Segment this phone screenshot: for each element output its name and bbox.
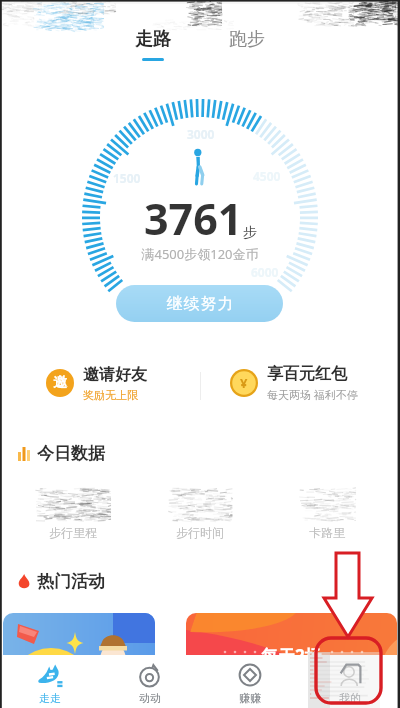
other: 走走 (37, 662, 63, 688)
other: 动动 (137, 662, 163, 688)
staticText: 每天两场 福利不停 (267, 387, 358, 402)
button[interactable]: 步行时间 (136, 486, 263, 540)
staticText: 6000 (251, 264, 279, 280)
staticText: 热门活动 (37, 571, 105, 592)
staticText: 步行时间 (176, 525, 224, 540)
staticText: 赚赚 (239, 691, 261, 705)
staticText: 1500 (113, 170, 141, 186)
button[interactable]: 我的 (300, 655, 400, 708)
staticText: 满4500步领120金币 (0, 245, 400, 263)
staticText: 走路 (135, 28, 171, 51)
staticText: 跑步 (229, 28, 265, 51)
staticText: 邀 (53, 374, 67, 392)
staticText: 走走 (39, 691, 61, 705)
staticText: 4500 (253, 168, 281, 184)
staticText: 继续努力 (166, 294, 234, 314)
staticText: 我的 (339, 691, 361, 705)
button[interactable] (3, 613, 155, 708)
button[interactable]: 卡路里 (263, 486, 390, 540)
staticText: 卡路里 (309, 525, 345, 540)
staticText: 邀请好友 (83, 365, 147, 385)
button[interactable]: 继续努力 (116, 285, 283, 322)
button[interactable]: 跑步 (219, 28, 275, 61)
staticText: 今日数据 (37, 443, 105, 464)
button[interactable]: 邀 (15, 348, 200, 418)
button[interactable]: ¥ (201, 348, 385, 418)
staticText: 3000 (187, 126, 215, 142)
staticText: 步 (243, 224, 257, 242)
staticText: 3761 (144, 189, 243, 248)
staticText: 享百元红包 (267, 364, 347, 384)
button[interactable]: 走走 (0, 655, 100, 708)
button[interactable]: 每天2场 (186, 613, 397, 708)
button[interactable]: 赚赚 (200, 655, 300, 708)
staticText: 奖励无上限 (83, 388, 138, 402)
other: 我的 (337, 662, 363, 688)
button[interactable]: 走路 (125, 28, 181, 61)
other: 赚赚 (237, 662, 263, 688)
staticText: 步行里程 (49, 525, 97, 540)
button[interactable]: 步行里程 (10, 486, 136, 540)
staticText: 每天2场 (261, 644, 322, 667)
staticText: ¥ (240, 374, 248, 392)
staticText: 动动 (139, 691, 161, 705)
button[interactable]: 动动 (100, 655, 200, 708)
